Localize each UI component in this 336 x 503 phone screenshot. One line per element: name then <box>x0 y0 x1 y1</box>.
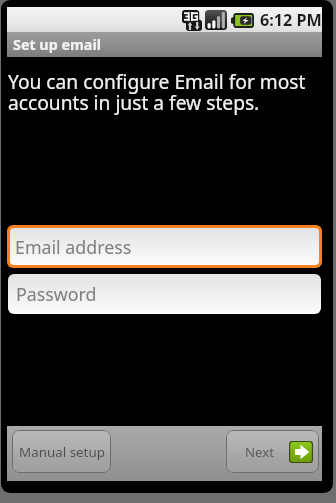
staticText: Email address <box>15 235 132 259</box>
staticText: Set up email <box>13 35 101 54</box>
staticText: Manual setup <box>19 443 105 461</box>
other: Next <box>289 441 313 463</box>
button[interactable]: Manual setup <box>12 430 111 473</box>
staticText: Next <box>245 443 274 461</box>
button[interactable]: Next <box>226 430 319 473</box>
staticText: 6:12 PM <box>260 9 322 31</box>
button[interactable]: Email address <box>10 228 319 265</box>
staticText: Password <box>16 282 97 306</box>
button[interactable]: Password <box>8 274 321 314</box>
staticText: You can configure Email for most account… <box>8 68 318 116</box>
